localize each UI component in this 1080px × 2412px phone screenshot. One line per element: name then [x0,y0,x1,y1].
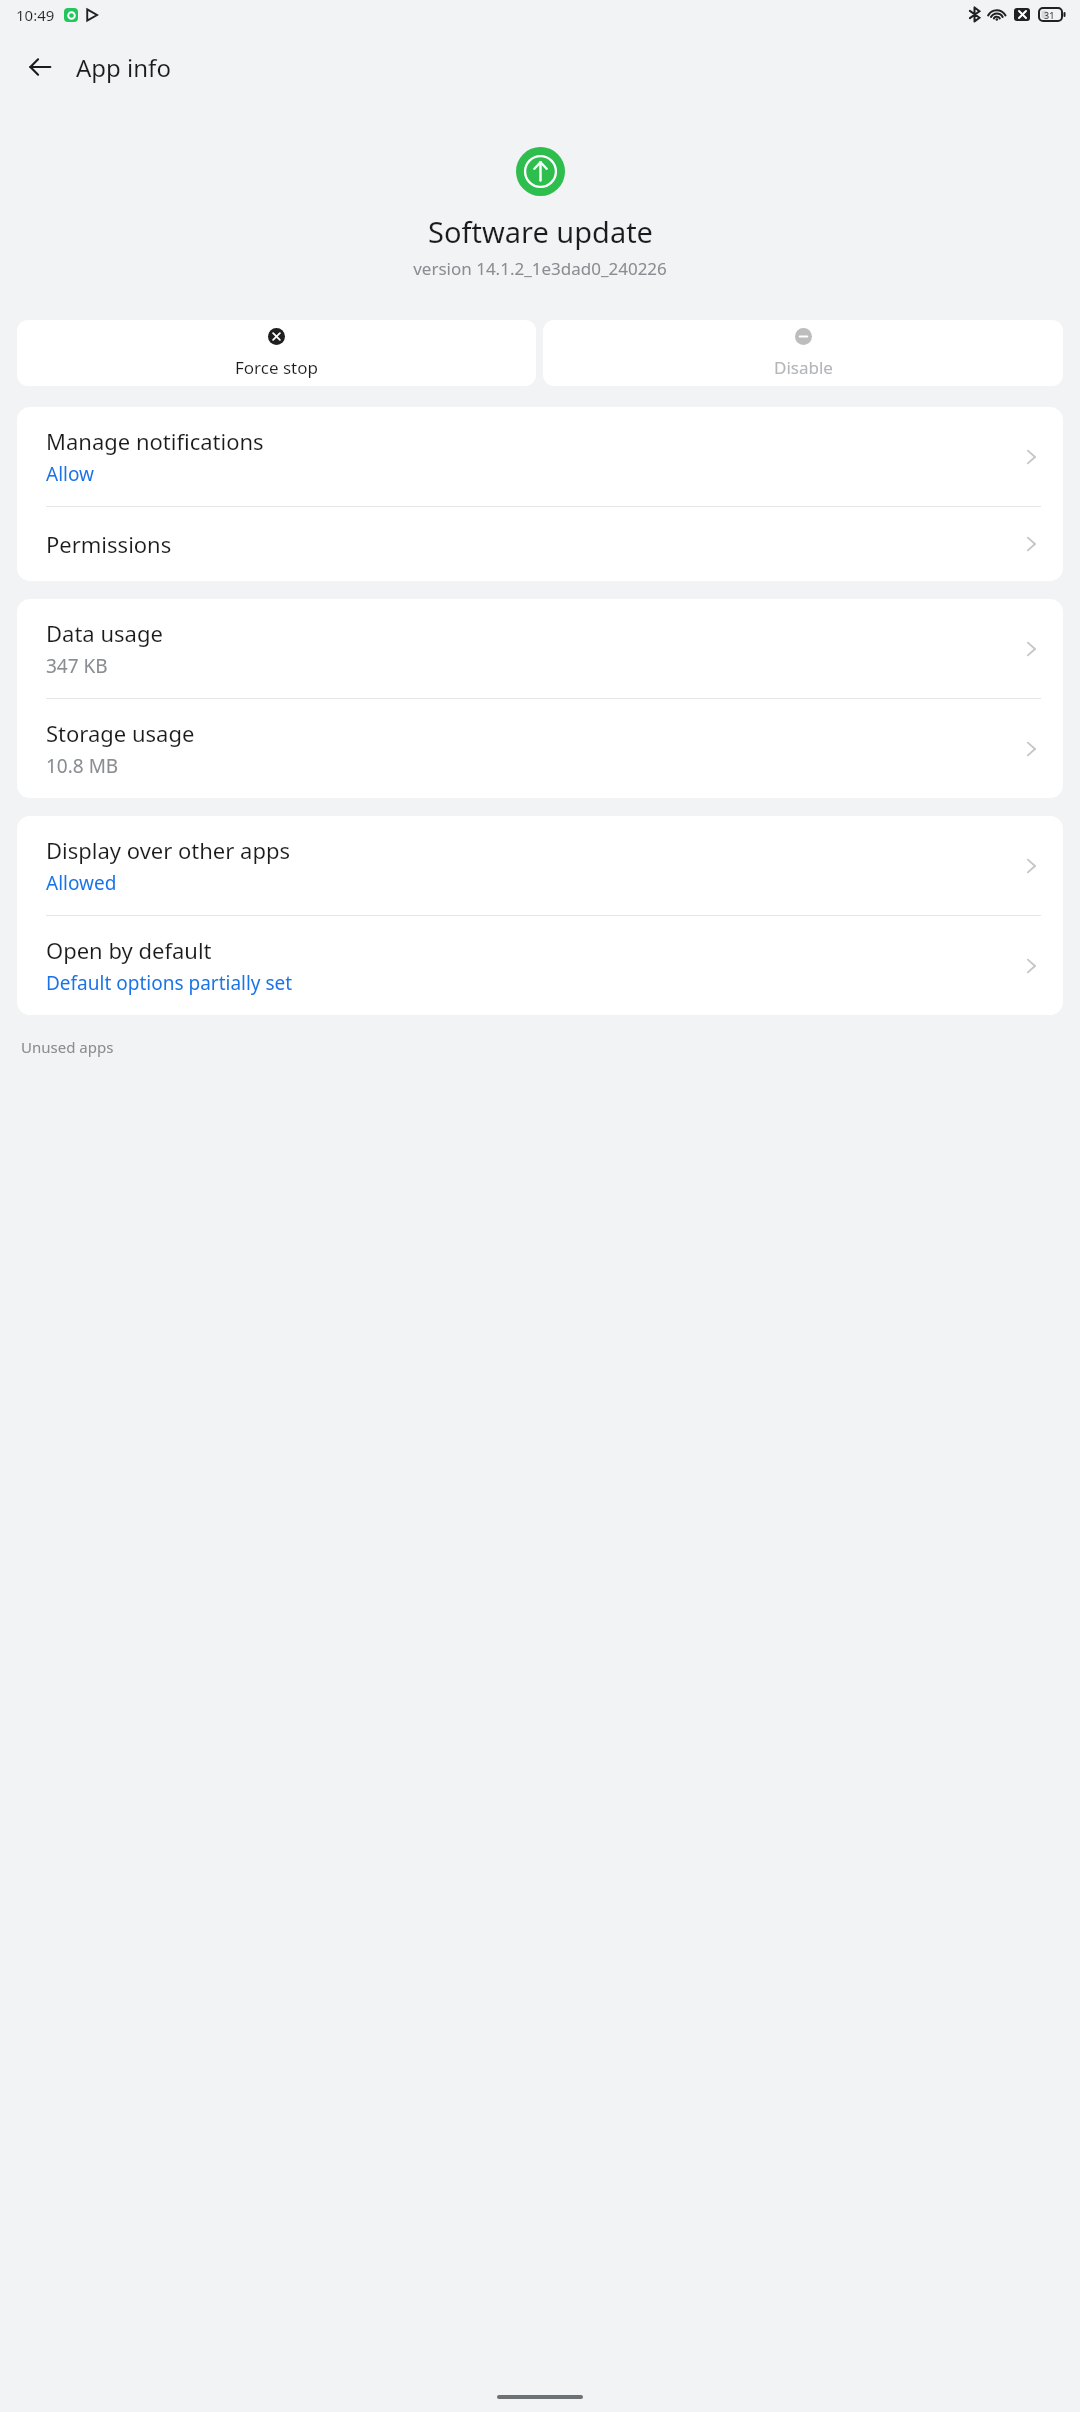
button[interactable]: Disable [543,320,1063,386]
staticText: 31 [1044,9,1055,21]
staticText: Allowed [46,870,117,896]
button[interactable]: Force stop [17,320,536,386]
staticText: 347 KB [46,653,108,679]
staticText: Manage notifications [46,426,264,456]
staticText: Display over other apps [46,835,291,865]
staticText: version 14.1.2_1e3dad0_240226 [413,257,667,280]
staticText: App info [76,51,171,84]
staticText: Force stop [235,356,318,379]
button[interactable]: Data usage [17,599,1063,698]
staticText: Software update [428,212,653,251]
staticText: Disable [774,356,833,379]
staticText: Unused apps [21,1037,114,1057]
staticText: 10.8 MB [46,753,119,779]
button[interactable]: Manage notifications [17,407,1063,506]
button[interactable]: Permissions [17,507,1063,581]
staticText: Allow [46,461,94,487]
staticText: Default options partially set [46,970,293,996]
button[interactable]: Open by default [17,916,1063,1015]
button[interactable]: Display over other apps [17,816,1063,915]
staticText: Permissions [46,529,172,559]
staticText: Storage usage [46,718,195,748]
staticText: 10:49 [16,5,55,25]
staticText: Data usage [46,618,163,648]
button[interactable]: Storage usage [17,699,1063,798]
button[interactable]: Back [16,43,64,91]
staticText: Open by default [46,935,212,965]
